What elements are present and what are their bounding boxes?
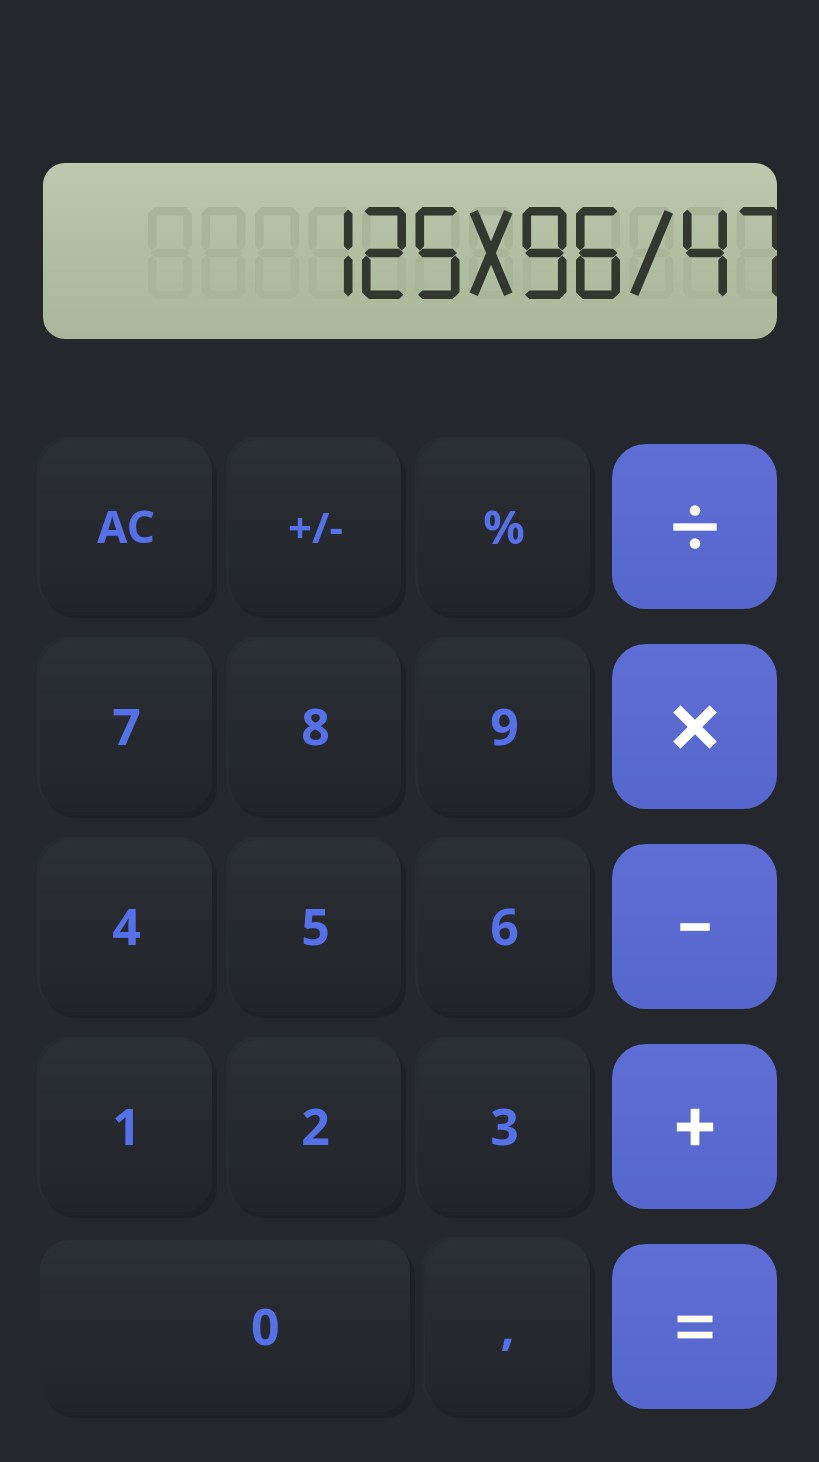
button[interactable]: 3 xyxy=(418,1040,590,1212)
staticText: 9 xyxy=(490,692,519,760)
button[interactable]: , xyxy=(425,1240,590,1412)
staticText: 8 xyxy=(301,692,330,760)
button[interactable]: % xyxy=(418,440,590,612)
button[interactable]: AC xyxy=(40,440,212,612)
button[interactable]: Plus xyxy=(612,1044,777,1209)
button[interactable]: 5 xyxy=(229,840,401,1012)
button[interactable]: Multiply xyxy=(612,644,777,809)
button[interactable]: 9 xyxy=(418,640,590,812)
button[interactable]: 8 xyxy=(229,640,401,812)
staticText: 0 xyxy=(251,1292,280,1360)
staticText: 1 xyxy=(112,1092,141,1160)
staticText: AC xyxy=(97,496,155,556)
staticText: +/- xyxy=(288,498,343,555)
button[interactable]: 1 xyxy=(40,1040,212,1212)
button[interactable]: 0 xyxy=(40,1240,410,1412)
button[interactable]: 7 xyxy=(40,640,212,812)
button[interactable]: 6 xyxy=(418,840,590,1012)
staticText: % xyxy=(483,495,525,558)
staticText: 2 xyxy=(301,1092,330,1160)
button[interactable]: 4 xyxy=(40,840,212,1012)
staticText: 3 xyxy=(490,1092,519,1160)
staticText: 6 xyxy=(490,892,519,960)
button[interactable]: Equals xyxy=(612,1244,777,1409)
button[interactable]: +/- xyxy=(229,440,401,612)
staticText: , xyxy=(500,1292,515,1360)
staticText: 4 xyxy=(112,892,141,960)
button[interactable]: Divide xyxy=(612,444,777,609)
staticText: 7 xyxy=(112,692,141,760)
staticText: 5 xyxy=(301,892,330,960)
button[interactable]: Minus xyxy=(612,844,777,1009)
button[interactable]: 2 xyxy=(229,1040,401,1212)
